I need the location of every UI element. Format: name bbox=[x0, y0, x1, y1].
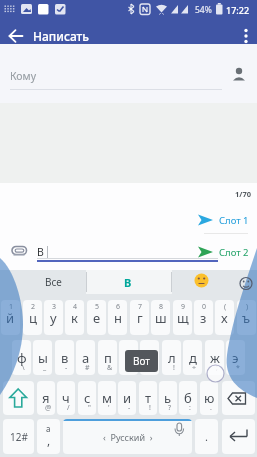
staticText: и bbox=[123, 389, 132, 407]
staticText: п bbox=[104, 349, 112, 367]
button[interactable]: у bbox=[44, 300, 63, 335]
staticText: х bbox=[221, 309, 228, 327]
button[interactable]: х bbox=[215, 300, 234, 335]
staticText: 4 bbox=[73, 302, 78, 312]
button[interactable]: с bbox=[78, 381, 96, 415]
button[interactable]: я bbox=[37, 381, 55, 415]
button[interactable]: ю bbox=[200, 381, 218, 415]
staticText: р bbox=[125, 349, 133, 367]
button[interactable]: р bbox=[119, 340, 138, 375]
button[interactable]: к bbox=[65, 300, 84, 335]
button[interactable]: ц bbox=[23, 300, 42, 335]
staticText: м bbox=[102, 389, 112, 407]
button[interactable]: д bbox=[183, 340, 202, 375]
staticText: ( bbox=[224, 302, 227, 312]
staticText: 5 bbox=[95, 302, 100, 312]
staticText: / bbox=[67, 403, 70, 413]
button[interactable]: 12# bbox=[3, 419, 34, 454]
button[interactable]: В bbox=[37, 245, 51, 259]
button[interactable] bbox=[194, 273, 209, 288]
button[interactable]: В bbox=[98, 270, 158, 294]
button[interactable]: ь bbox=[159, 381, 177, 415]
button[interactable]: й bbox=[1, 300, 20, 335]
staticText: Написать bbox=[33, 28, 90, 44]
button[interactable] bbox=[238, 275, 255, 292]
staticText: з bbox=[200, 309, 207, 327]
button[interactable] bbox=[222, 419, 255, 454]
staticText: с bbox=[84, 389, 91, 407]
button[interactable]: и bbox=[118, 381, 136, 415]
button[interactable]: щ bbox=[173, 300, 192, 335]
button[interactable]: м bbox=[98, 381, 116, 415]
button[interactable] bbox=[86, 270, 172, 294]
staticText: * bbox=[236, 363, 240, 373]
button[interactable] bbox=[3, 381, 34, 415]
staticText: ж bbox=[210, 349, 220, 367]
staticText: ₽ bbox=[149, 363, 154, 373]
button[interactable] bbox=[4, 26, 26, 46]
staticText: н bbox=[114, 309, 122, 327]
staticText: 0 bbox=[202, 302, 207, 312]
staticText: а bbox=[46, 423, 51, 434]
button[interactable]: Слот 1 bbox=[219, 214, 255, 226]
button[interactable]: . bbox=[195, 419, 218, 454]
button[interactable]: а bbox=[76, 340, 95, 375]
staticText: : bbox=[189, 403, 191, 413]
staticText: ‹ Русский › bbox=[103, 431, 153, 443]
button[interactable]: л bbox=[162, 340, 181, 375]
button[interactable]: з bbox=[194, 300, 213, 335]
staticText: у bbox=[50, 309, 57, 327]
button[interactable]: о bbox=[140, 340, 159, 375]
button[interactable] bbox=[238, 26, 254, 46]
staticText: . bbox=[210, 403, 212, 413]
button[interactable]: Вот bbox=[125, 350, 158, 372]
staticText: " bbox=[88, 403, 91, 413]
staticText: я bbox=[42, 389, 50, 407]
staticText: 7 bbox=[138, 302, 143, 312]
button[interactable] bbox=[195, 210, 257, 228]
button[interactable]: в bbox=[55, 340, 74, 375]
button[interactable]: ъ bbox=[237, 300, 256, 335]
button[interactable]: п bbox=[98, 340, 117, 375]
button[interactable] bbox=[230, 65, 248, 85]
button[interactable]: э bbox=[226, 340, 245, 375]
staticText: ! bbox=[173, 363, 175, 373]
staticText: э bbox=[232, 349, 239, 367]
staticText: 3 bbox=[52, 302, 57, 312]
button[interactable]: е bbox=[87, 300, 106, 335]
button[interactable]: ы bbox=[33, 340, 52, 375]
button[interactable]: ‹ Русский › bbox=[63, 419, 192, 454]
staticText: 9 bbox=[181, 302, 186, 312]
staticText: - bbox=[128, 403, 131, 413]
button[interactable]: т bbox=[139, 381, 157, 415]
button[interactable]: н bbox=[108, 300, 127, 335]
button[interactable]: ш bbox=[151, 300, 170, 335]
staticText: к bbox=[71, 309, 78, 327]
button[interactable] bbox=[8, 242, 30, 258]
button[interactable] bbox=[195, 242, 257, 260]
staticText: , bbox=[47, 432, 51, 448]
button[interactable]: б bbox=[179, 381, 197, 415]
button[interactable]: а bbox=[37, 419, 60, 454]
staticText: т bbox=[145, 389, 152, 407]
button[interactable]: Все bbox=[23, 270, 83, 294]
staticText: ' bbox=[108, 403, 110, 413]
staticText: ! bbox=[149, 403, 151, 413]
button[interactable]: Слот 2 bbox=[219, 246, 255, 258]
button[interactable]: ж bbox=[205, 340, 224, 375]
staticText: 8 bbox=[159, 302, 164, 312]
staticText: В bbox=[37, 245, 44, 259]
staticText: д bbox=[189, 349, 197, 367]
staticText: о bbox=[146, 349, 154, 367]
staticText: 2 bbox=[31, 302, 36, 312]
staticText: В bbox=[124, 275, 132, 290]
button[interactable] bbox=[222, 381, 255, 415]
staticText: Все bbox=[45, 275, 62, 289]
button[interactable]: Кому bbox=[10, 68, 70, 84]
staticText: ц bbox=[29, 309, 37, 327]
button[interactable]: г bbox=[130, 300, 149, 335]
staticText: 6 bbox=[116, 302, 121, 312]
button[interactable]: ф bbox=[12, 340, 31, 375]
staticText: ъ bbox=[242, 309, 251, 327]
button[interactable]: ч bbox=[57, 381, 75, 415]
